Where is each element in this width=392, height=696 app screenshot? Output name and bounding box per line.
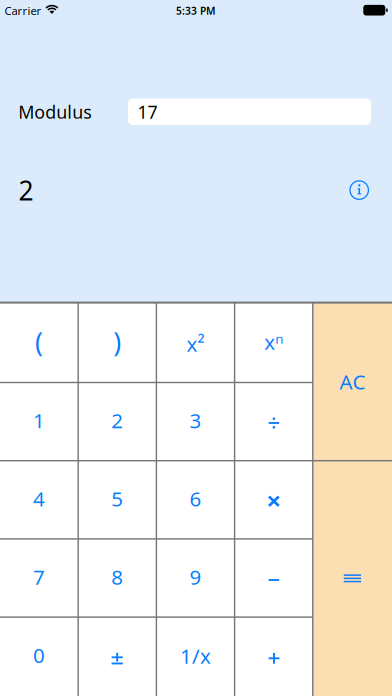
button[interactable]: 9 <box>157 540 234 616</box>
button[interactable]: 7 <box>1 540 78 616</box>
button[interactable] <box>235 462 312 538</box>
button[interactable] <box>313 461 391 696</box>
staticText: 4 <box>33 484 45 512</box>
button[interactable]: 8 <box>79 540 156 616</box>
button[interactable] <box>235 540 312 616</box>
staticText: 6 <box>189 484 201 512</box>
button[interactable]: 3 <box>157 384 234 460</box>
staticText: 3 <box>189 406 201 434</box>
staticText: 5:33 PM <box>176 4 216 18</box>
button[interactable] <box>235 618 312 694</box>
button[interactable]: 0 <box>1 618 78 694</box>
staticText: Modulus <box>18 100 92 124</box>
staticText: 2 <box>18 172 33 208</box>
staticText: 9 <box>189 563 201 591</box>
button[interactable]: AC <box>313 303 391 461</box>
staticText: 7 <box>33 563 45 591</box>
button[interactable]: 4 <box>1 462 78 538</box>
staticText: 0 <box>33 641 45 669</box>
staticText: xⁿ <box>264 328 283 356</box>
button[interactable]: 1/x <box>157 618 234 694</box>
staticText: 5 <box>111 484 123 512</box>
button[interactable]: 5 <box>79 462 156 538</box>
button[interactable]: 17 <box>128 98 371 125</box>
button[interactable]: x² <box>157 305 234 381</box>
staticText: 8 <box>111 563 123 591</box>
button[interactable]: ) <box>79 305 156 381</box>
button[interactable]: 2 <box>79 384 156 460</box>
staticText: 1/x <box>180 642 211 670</box>
button[interactable]: 1 <box>1 384 78 460</box>
staticText: ) <box>113 324 121 360</box>
button[interactable]: 6 <box>157 462 234 538</box>
staticText: x² <box>186 330 204 358</box>
button[interactable]: ( <box>1 305 78 381</box>
staticText: 1 <box>33 406 45 434</box>
button[interactable]: xⁿ <box>235 305 312 381</box>
button[interactable] <box>235 384 312 460</box>
staticText: Carrier <box>4 3 41 18</box>
staticText: AC <box>339 368 365 396</box>
staticText: 17 <box>137 100 157 124</box>
button[interactable] <box>350 181 369 200</box>
button[interactable] <box>79 618 156 694</box>
staticText: ( <box>35 324 43 360</box>
staticText: 2 <box>111 406 123 434</box>
